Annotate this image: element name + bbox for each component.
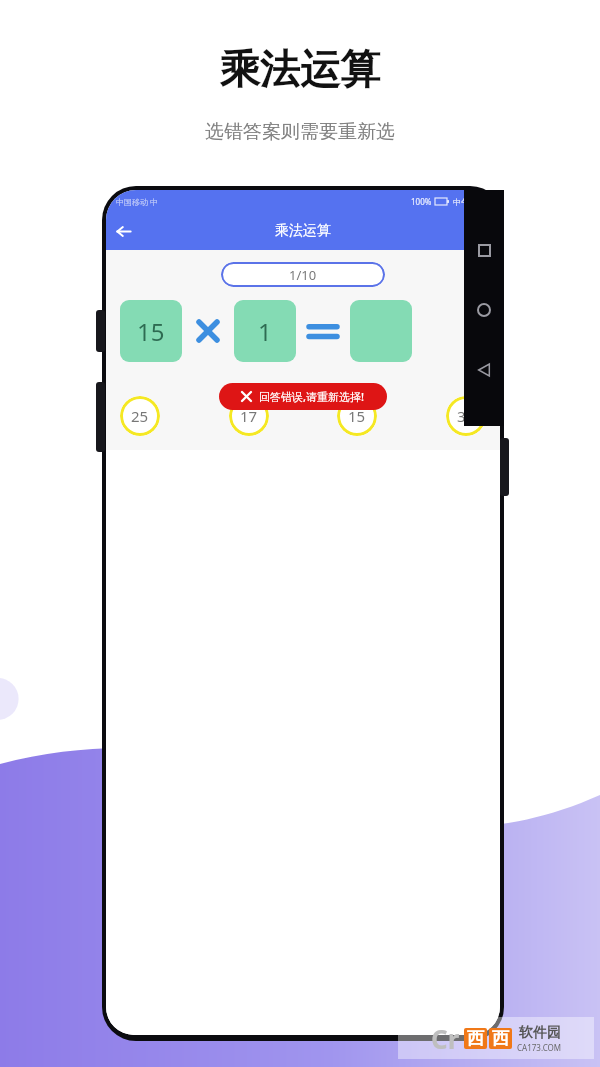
staticText: 37 [457, 406, 475, 426]
staticText: 西 [467, 1028, 484, 1049]
staticText: 中午11:40 [453, 196, 490, 207]
staticText: 西 [492, 1028, 509, 1049]
staticText: 100% [411, 196, 432, 207]
staticText: 25 [131, 406, 149, 426]
staticText: 选错答案则需要重新选 [205, 120, 395, 144]
staticText: 1 [258, 315, 272, 348]
staticText: 中国移动 中 [116, 196, 159, 207]
staticText: 1/10 [289, 266, 317, 284]
button[interactable] [350, 300, 412, 362]
button[interactable]: 15 [120, 300, 182, 362]
staticText: 回答错误,请重新选择! [259, 389, 365, 404]
button[interactable]: 1/10 [221, 262, 385, 287]
button[interactable]: 15 [337, 396, 377, 436]
staticText: CA173.COM [517, 1042, 562, 1053]
staticText: Cr [431, 1021, 460, 1056]
button[interactable]: Back [477, 363, 491, 377]
staticText: 乘法运算 [275, 222, 331, 240]
button[interactable]: 25 [120, 396, 160, 436]
button[interactable]: 1 [234, 300, 296, 362]
button[interactable]: 17 [229, 396, 269, 436]
staticText: 15 [137, 315, 165, 348]
button[interactable]: 回答错误,请重新选择! [219, 383, 387, 410]
button[interactable]: 37 [446, 396, 486, 436]
staticText: 乘法运算 [220, 44, 380, 94]
staticText: 17 [240, 406, 258, 426]
button[interactable]: Home [477, 303, 491, 317]
staticText: 15 [348, 406, 366, 426]
button[interactable]: Back [106, 214, 140, 248]
staticText: 软件园 [519, 1024, 561, 1042]
button[interactable]: Recent apps [478, 244, 491, 257]
